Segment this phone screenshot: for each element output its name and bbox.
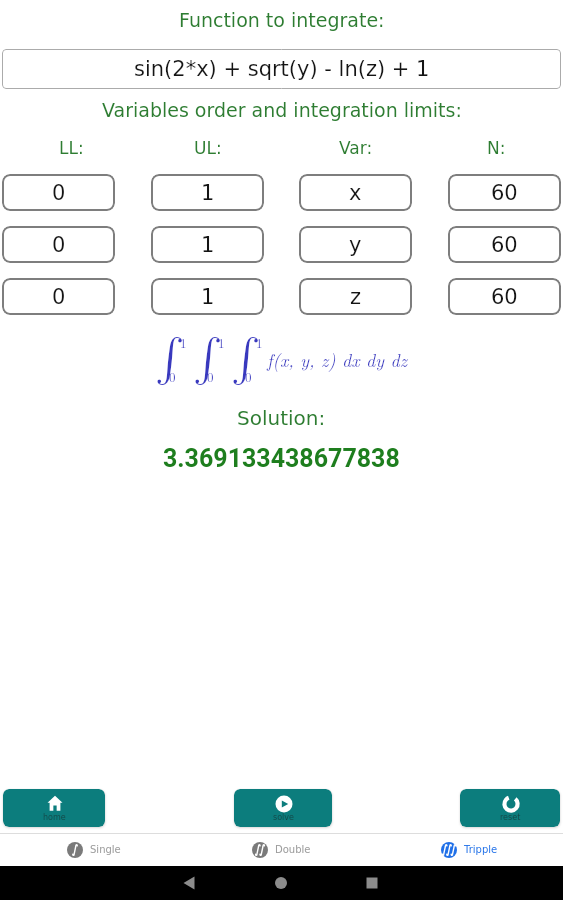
button[interactable]: Single [0,834,187,866]
staticText: Variables order and integration limits: [102,99,462,121]
button[interactable]: 0 [2,278,115,315]
staticText: ∫ [155,337,185,381]
staticText: home [43,813,66,822]
staticText: 1 [201,181,215,205]
button[interactable]: Double [187,834,375,866]
staticText: y [349,233,362,257]
staticText: z [350,285,362,309]
staticText: sin(2*x) + sqrt(y) - ln(z) + 1 [134,57,430,81]
staticText: 0 [207,367,214,385]
staticText: 60 [491,181,518,205]
staticText: ∫ [231,337,261,381]
staticText: 0 [52,285,66,309]
button[interactable]: 60 [448,226,561,263]
staticText: 1 [218,333,225,351]
button[interactable]: reset [460,789,560,827]
staticText: Var: [339,138,373,158]
button[interactable]: Tripple [375,834,563,866]
staticText: 0 [52,181,66,205]
staticText: f(x, y, z) dx dy dz [267,347,408,372]
staticText: ∫ [193,337,223,381]
staticText: 60 [491,233,518,257]
button[interactable]: 0 [2,226,115,263]
staticText: 0 [245,367,252,385]
staticText: Solution: [237,406,326,429]
button[interactable]: solve [234,789,332,827]
staticText: x [349,181,362,205]
staticText: Tripple [464,844,498,856]
button[interactable]: 1 [151,174,264,211]
staticText: 1 [201,233,215,257]
button[interactable]: 1 [151,278,264,315]
staticText: N: [487,138,506,158]
staticText: 1 [201,285,215,309]
staticText: solve [273,813,294,822]
staticText: 3.369133438677838 [163,444,400,473]
button[interactable]: 0 [2,174,115,211]
staticText: Single [90,844,121,856]
button[interactable]: sin(2*x) + sqrt(y) - ln(z) + 1 [2,49,561,89]
staticText: UL: [194,138,222,158]
button[interactable]: 1 [151,226,264,263]
staticText: LL: [59,138,84,158]
staticText: 0 [52,233,66,257]
button[interactable]: z [299,278,412,315]
staticText: Double [275,844,311,856]
button[interactable]: 60 [448,278,561,315]
button[interactable]: home [3,789,105,827]
staticText: Function to integrate: [179,9,385,31]
staticText: 1 [256,333,263,351]
staticText: reset [500,813,521,822]
button[interactable]: 60 [448,174,561,211]
button[interactable]: y [299,226,412,263]
staticText: 1 [180,333,187,351]
staticText: 0 [169,367,176,385]
button[interactable]: x [299,174,412,211]
staticText: 60 [491,285,518,309]
